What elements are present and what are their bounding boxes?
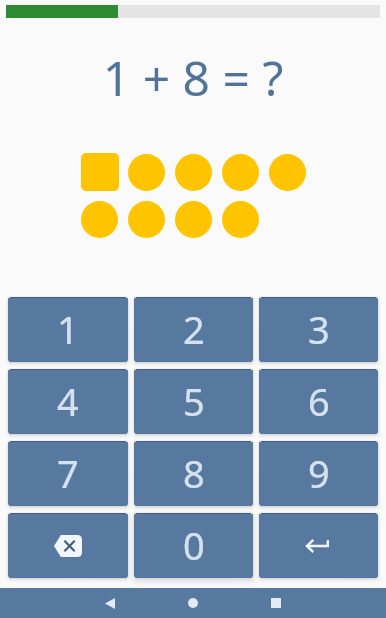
button[interactable]: 3	[259, 298, 378, 362]
button[interactable]: 0	[134, 514, 253, 578]
button[interactable]: Backspace	[8, 514, 128, 578]
staticText: 8	[183, 447, 205, 499]
button[interactable]: 1	[8, 298, 128, 362]
staticText: 1	[57, 303, 79, 355]
staticText: 3	[308, 303, 330, 355]
staticText: 7	[57, 447, 79, 499]
staticText: 0	[183, 519, 205, 571]
staticText: 2	[183, 303, 205, 355]
button[interactable]: 8	[134, 442, 253, 506]
button[interactable]: 5	[134, 370, 253, 434]
button[interactable]: 9	[259, 442, 378, 506]
button[interactable]: 7	[8, 442, 128, 506]
button[interactable]: Back	[86, 588, 134, 618]
button[interactable]: Home	[169, 588, 217, 618]
staticText: 9	[308, 447, 330, 499]
button[interactable]: 2	[134, 298, 253, 362]
button[interactable]: 6	[259, 370, 378, 434]
staticText: 1 + 8 = ?	[0, 45, 386, 110]
button[interactable]: Recents	[252, 588, 300, 618]
staticText: 5	[183, 375, 205, 427]
button[interactable]: Enter	[259, 514, 378, 578]
staticText: 4	[57, 375, 79, 427]
staticText: 6	[308, 375, 330, 427]
button[interactable]: 4	[8, 370, 128, 434]
